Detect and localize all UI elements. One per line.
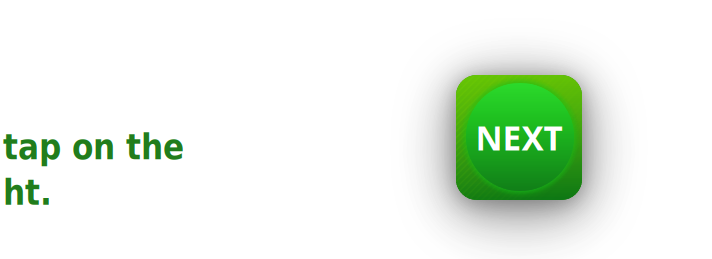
button[interactable]: NEXT <box>0 0 712 259</box>
staticText: ht. <box>3 172 52 213</box>
staticText: NEXT <box>475 115 562 160</box>
staticText: tap on the <box>3 127 184 167</box>
